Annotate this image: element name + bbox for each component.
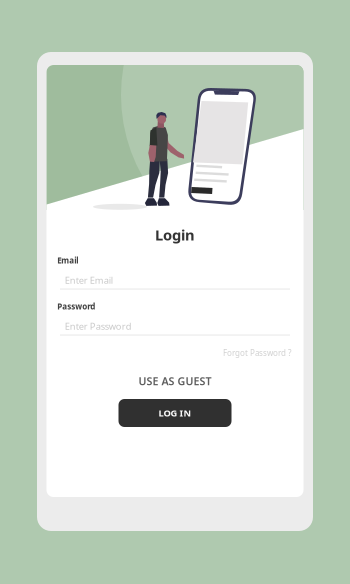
button[interactable]: Forgot Password ?	[58, 345, 291, 360]
staticText: Enter Email	[65, 274, 113, 286]
button[interactable]: Password	[46, 301, 303, 335]
staticText: Enter Password	[65, 320, 132, 332]
staticText: Password	[57, 301, 95, 312]
button[interactable]: LOG IN	[118, 399, 231, 427]
staticText: Email	[57, 255, 78, 266]
button[interactable]: USE AS GUEST	[46, 371, 303, 391]
staticText: Login	[155, 225, 195, 244]
staticText: LOG IN	[158, 407, 191, 419]
button[interactable]: Email	[46, 255, 303, 289]
staticText: USE AS GUEST	[138, 374, 211, 388]
staticText: Forgot Password ?	[223, 347, 291, 358]
